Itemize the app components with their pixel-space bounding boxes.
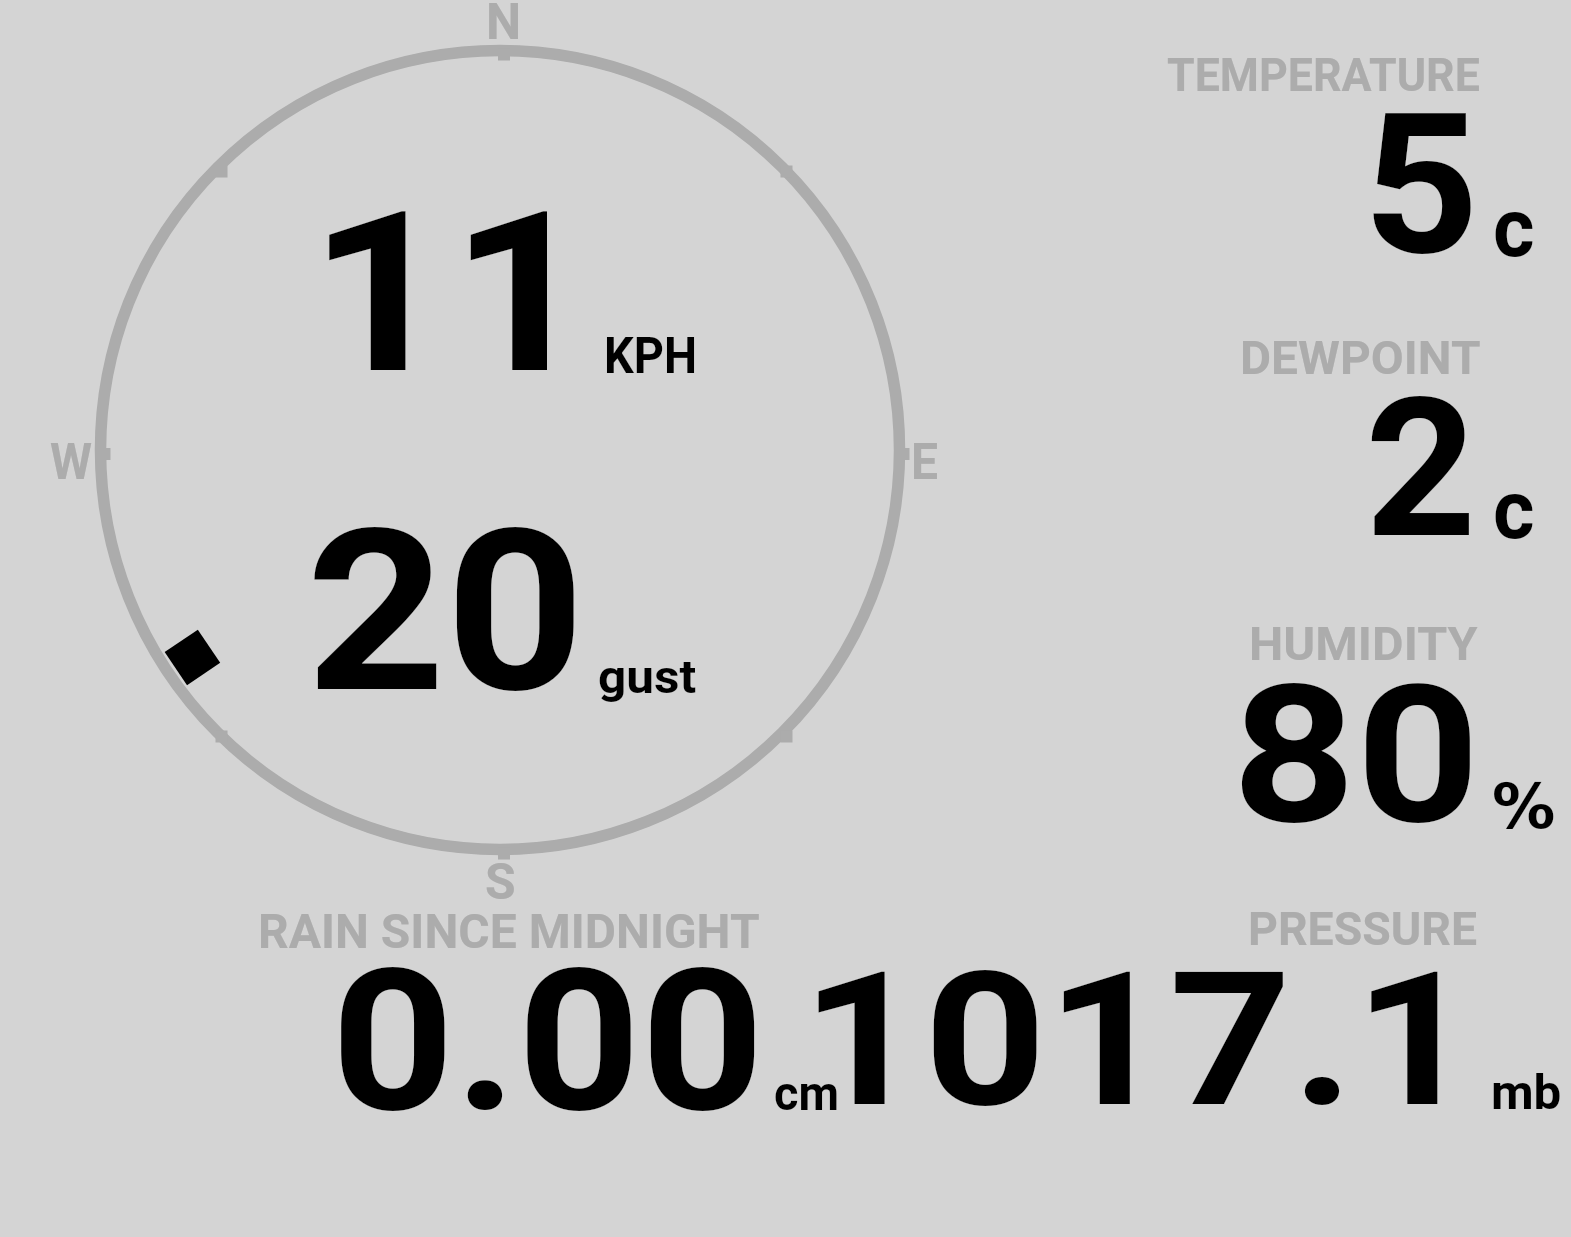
staticText: 2 bbox=[1365, 356, 1477, 582]
staticText: mb bbox=[1491, 1065, 1562, 1120]
staticText: % bbox=[1492, 770, 1556, 842]
button[interactable]: 20 bbox=[300, 478, 720, 706]
staticText: DEWPOINT bbox=[1240, 331, 1481, 385]
other: Wind direction compass bbox=[0, 0, 1571, 1237]
staticText: E bbox=[911, 432, 938, 492]
button[interactable]: RAIN SINCE MIDNIGHT bbox=[250, 895, 850, 1120]
staticText: KPH bbox=[604, 327, 698, 386]
staticText: cm bbox=[774, 1065, 839, 1121]
staticText: S bbox=[485, 852, 516, 912]
staticText: PRESSURE bbox=[1248, 902, 1477, 956]
staticText: 0.00 bbox=[331, 926, 765, 1151]
staticText: N bbox=[486, 0, 521, 52]
button[interactable]: HUMIDITY bbox=[1120, 609, 1560, 839]
button[interactable]: DEWPOINT bbox=[1120, 323, 1560, 553]
staticText: 11 bbox=[309, 164, 593, 389]
staticText: W bbox=[50, 432, 92, 492]
staticText: c bbox=[1493, 180, 1535, 276]
button[interactable]: TEMPERATURE bbox=[1120, 40, 1560, 270]
staticText: c bbox=[1493, 462, 1535, 558]
staticText: 80 bbox=[1232, 643, 1481, 868]
button[interactable]: 11 bbox=[300, 160, 720, 385]
staticText: HUMIDITY bbox=[1249, 617, 1478, 671]
staticText: 1017.1 bbox=[801, 931, 1477, 1149]
staticText: TEMPERATURE bbox=[1167, 48, 1480, 102]
staticText: RAIN SINCE MIDNIGHT bbox=[258, 904, 760, 960]
button[interactable]: PRESSURE bbox=[850, 895, 1560, 1120]
staticText: gust bbox=[598, 650, 697, 704]
staticText: 5 bbox=[1363, 72, 1479, 300]
staticText: 20 bbox=[306, 481, 585, 709]
